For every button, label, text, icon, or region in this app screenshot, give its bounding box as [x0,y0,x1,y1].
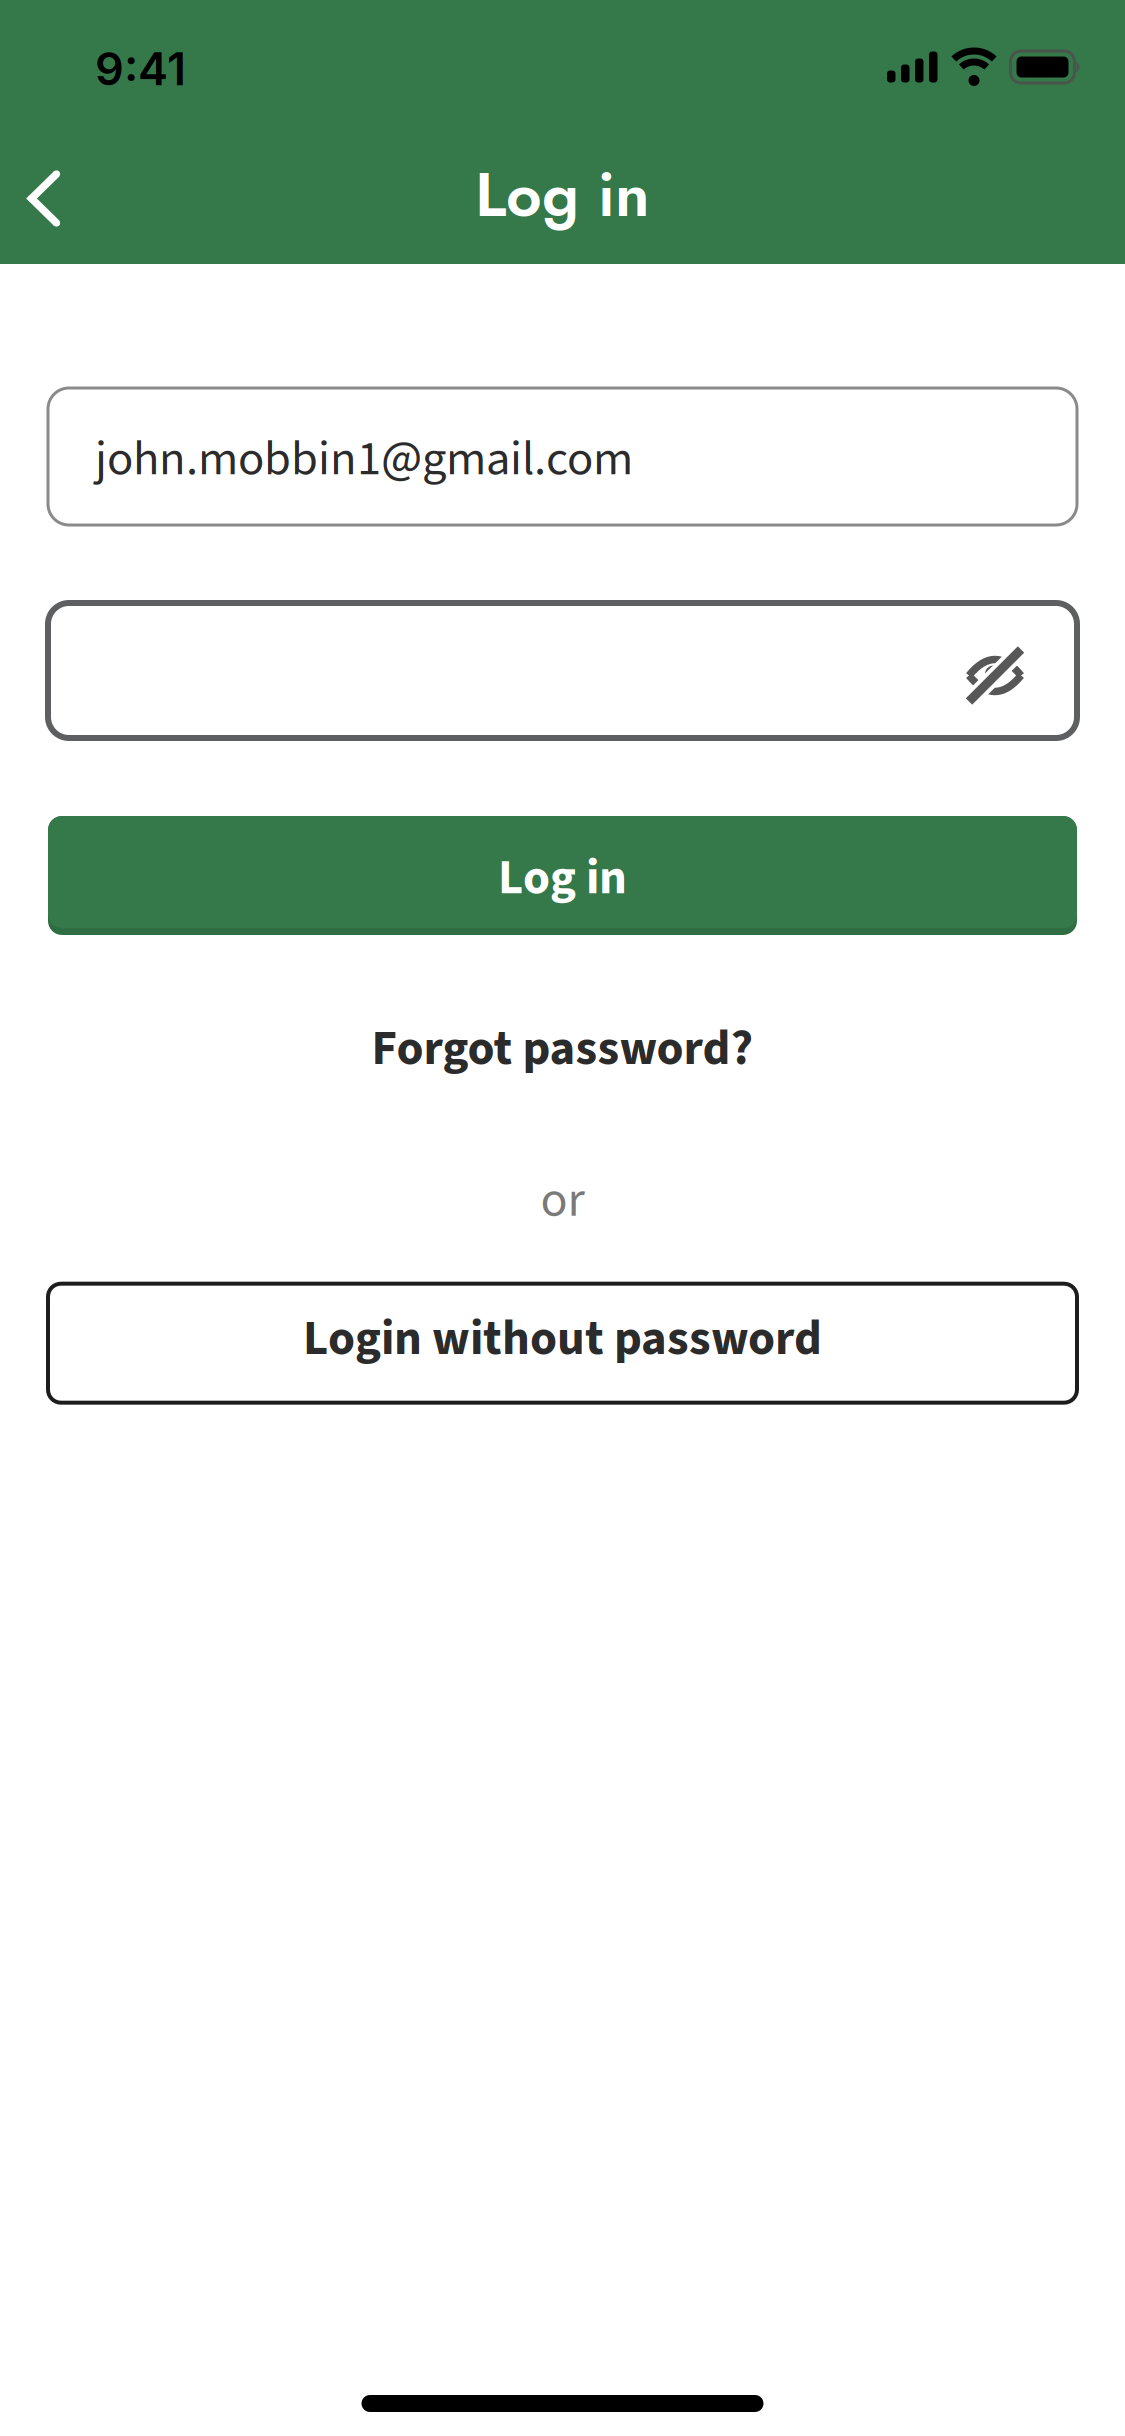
staticText: Login without password [303,1304,822,1373]
button[interactable]: Log in [48,816,1077,935]
staticText: or [540,1164,584,1236]
button[interactable]: Show password [939,611,1077,729]
button[interactable]: Forgot password? [371,1014,753,1083]
staticText: Log in [498,843,627,913]
staticText: john.mobbin1@gmail.com [95,424,633,494]
staticText: Forgot password? [371,1014,753,1083]
button[interactable]: Login without password [48,1284,1077,1403]
staticText: Log in [475,150,650,239]
staticText: 9:41 [95,42,186,96]
button[interactable]: Back [0,134,91,264]
